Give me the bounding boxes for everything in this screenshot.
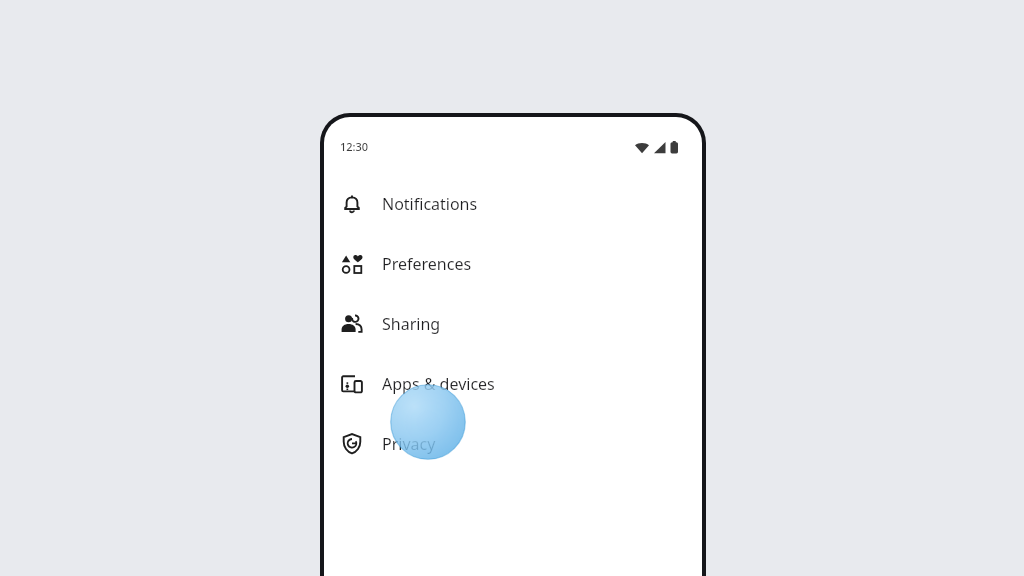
button[interactable]: Sharing — [324, 294, 702, 354]
button[interactable]: Privacy — [324, 414, 702, 474]
staticText: Preferences — [382, 253, 472, 275]
staticText: Notifications — [382, 193, 478, 215]
staticText: Sharing — [382, 313, 441, 335]
staticText: Apps & devices — [382, 373, 495, 395]
button[interactable]: Preferences — [324, 234, 702, 294]
button[interactable]: Apps & devices — [324, 354, 702, 414]
button[interactable]: Notifications — [324, 174, 702, 234]
staticText: 12:30 — [340, 139, 369, 154]
staticText: Privacy — [382, 433, 436, 455]
other: Touch indicator — [389, 383, 467, 461]
